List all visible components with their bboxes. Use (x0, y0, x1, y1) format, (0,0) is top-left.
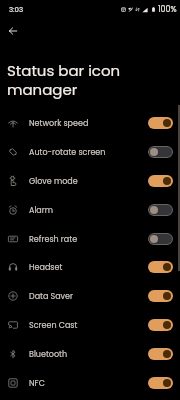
button[interactable]: NFC (0, 368, 180, 397)
button[interactable]: On (148, 175, 173, 187)
staticText: Bluetooth (29, 349, 68, 360)
button[interactable]: On (148, 117, 173, 129)
button[interactable]: Screen Cast (0, 310, 180, 339)
button[interactable]: Glove mode (0, 166, 180, 195)
button[interactable]: Off (148, 146, 173, 158)
staticText: Refresh rate (29, 234, 78, 245)
button[interactable]: On (148, 377, 173, 389)
button[interactable]: On (148, 348, 173, 360)
button[interactable]: Refresh rate (0, 224, 180, 253)
button[interactable]: Off (148, 204, 173, 216)
staticText: Status bar icon (7, 60, 121, 81)
button[interactable]: Data Saver (0, 281, 180, 310)
staticText: Alarm (29, 205, 53, 216)
button[interactable]: On (148, 290, 173, 302)
staticText: Headset (29, 262, 63, 273)
button[interactable]: Auto-rotate screen (0, 137, 180, 166)
staticText: Data Saver (29, 291, 74, 302)
staticText: Network speed (29, 118, 89, 129)
staticText: 100% (158, 4, 177, 15)
button[interactable]: Headset (0, 252, 180, 281)
button[interactable]: Alarm (0, 195, 180, 224)
button[interactable]: On (148, 261, 173, 273)
button[interactable]: Network speed (0, 108, 180, 137)
staticText: Auto-rotate screen (29, 147, 106, 158)
button[interactable]: Off (148, 233, 173, 245)
staticText: NFC (29, 378, 45, 389)
staticText: manager (7, 79, 78, 100)
button[interactable]: Bluetooth (0, 339, 180, 368)
button[interactable]: On (148, 319, 173, 331)
staticText: Screen Cast (29, 320, 78, 331)
staticText: 3:03 (9, 5, 24, 15)
staticText: Glove mode (29, 176, 78, 187)
button[interactable]: Back (2, 20, 23, 41)
